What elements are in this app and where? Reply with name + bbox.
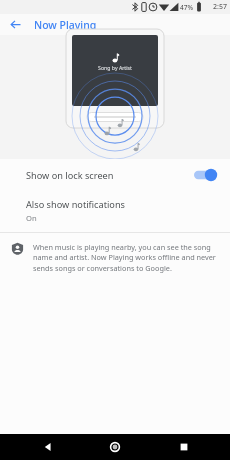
- staticText: Song by Artist: [85, 64, 145, 71]
- staticText: 2:57: [213, 2, 227, 12]
- button[interactable]: Back: [4, 14, 26, 35]
- button[interactable]: Show on lock screen toggle: [192, 166, 218, 184]
- staticText: Now Playing: [34, 18, 97, 32]
- button[interactable]: Back: [38, 437, 58, 457]
- staticText: When music is playing nearby, you can se…: [33, 242, 216, 273]
- staticText: Also show notifications: [26, 198, 125, 211]
- staticText: 47%: [180, 3, 193, 12]
- staticText: Show on lock screen: [26, 169, 192, 182]
- button[interactable]: Recents: [174, 437, 194, 457]
- button[interactable]: Also show notifications: [0, 195, 230, 232]
- button[interactable]: Show on lock screen: [0, 159, 230, 191]
- staticText: On: [26, 213, 37, 223]
- button[interactable]: Home: [104, 436, 126, 458]
